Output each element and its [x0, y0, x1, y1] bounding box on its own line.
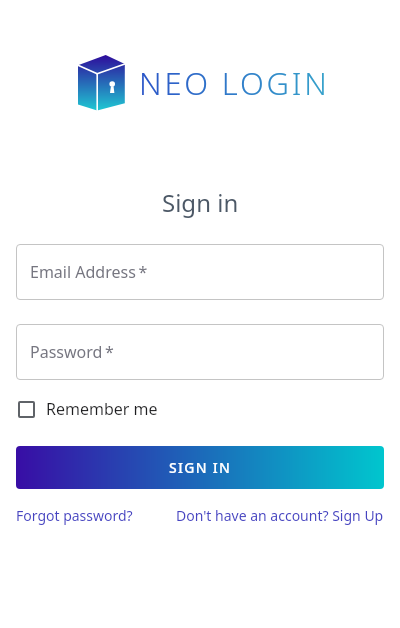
staticText: Password * [30, 341, 114, 363]
staticText: SIGN IN [169, 458, 232, 477]
button[interactable]: SIGN IN [16, 446, 384, 489]
staticText: NEO LOGIN [139, 62, 330, 104]
button[interactable]: Remember me [18, 398, 158, 420]
staticText: Email Address * [30, 261, 148, 283]
button[interactable]: Don't have an account? Sign Up [176, 506, 384, 525]
button[interactable]: Password * [16, 324, 384, 380]
button[interactable]: Forgot password? [16, 506, 133, 525]
staticText: Remember me [46, 398, 158, 420]
button[interactable]: Email Address * [16, 244, 384, 300]
staticText: Sign in [162, 186, 239, 219]
